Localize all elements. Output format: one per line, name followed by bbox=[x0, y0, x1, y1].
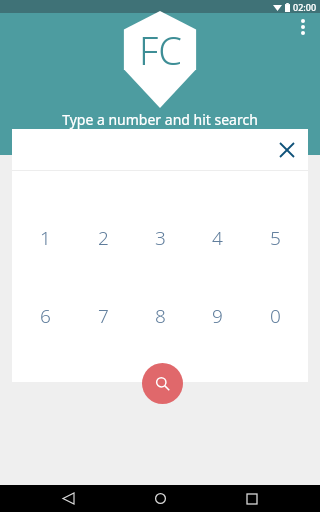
staticText: 3 bbox=[155, 225, 166, 251]
staticText: 02:00 bbox=[293, 1, 317, 13]
button[interactable]: More options bbox=[288, 12, 318, 42]
button[interactable]: Search bbox=[142, 363, 183, 404]
staticText: 4 bbox=[212, 225, 223, 251]
staticText: 1 bbox=[40, 225, 51, 251]
button[interactable]: Close bbox=[268, 131, 306, 169]
staticText: 6 bbox=[40, 303, 51, 329]
button[interactable]: 5 bbox=[251, 221, 299, 255]
button[interactable]: 1 bbox=[21, 221, 69, 255]
staticText: Type a number and hit search bbox=[0, 110, 320, 129]
button[interactable]: 2 bbox=[79, 221, 127, 255]
button[interactable]: 3 bbox=[136, 221, 184, 255]
button[interactable]: 6 bbox=[21, 299, 69, 333]
staticText: FC bbox=[139, 24, 182, 76]
button[interactable]: Recent apps bbox=[228, 485, 276, 512]
button[interactable]: 7 bbox=[79, 299, 127, 333]
button[interactable]: 0 bbox=[251, 299, 299, 333]
button[interactable]: 8 bbox=[136, 299, 184, 333]
staticText: 8 bbox=[155, 303, 166, 329]
staticText: 0 bbox=[270, 303, 281, 329]
button[interactable]: Home bbox=[136, 485, 184, 512]
staticText: 5 bbox=[270, 225, 281, 251]
button[interactable]: Back bbox=[44, 485, 92, 512]
staticText: 2 bbox=[98, 225, 109, 251]
staticText: 7 bbox=[98, 303, 109, 329]
staticText: 9 bbox=[212, 303, 223, 329]
button[interactable]: 4 bbox=[193, 221, 241, 255]
button[interactable]: 9 bbox=[193, 299, 241, 333]
